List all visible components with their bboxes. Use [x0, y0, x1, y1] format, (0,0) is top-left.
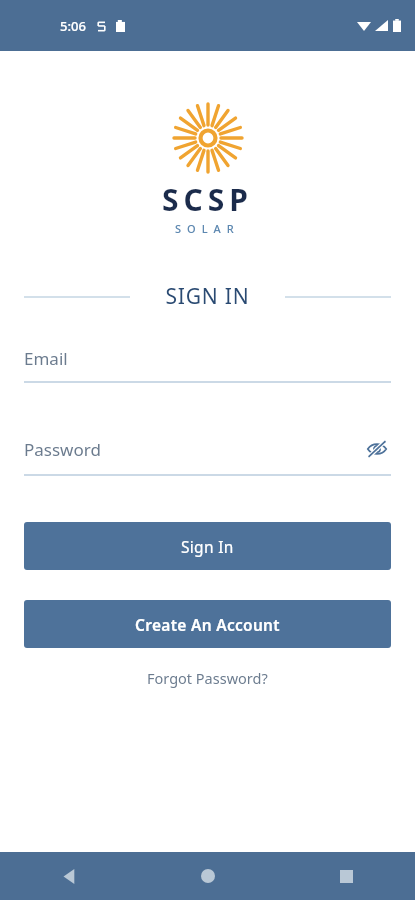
staticText: Forgot Password? — [147, 668, 268, 688]
button[interactable]: Create An Account — [24, 600, 391, 648]
staticText: SOLAR — [175, 221, 240, 236]
staticText: Email — [24, 347, 391, 370]
button[interactable]: Password — [24, 435, 391, 476]
button[interactable]: Email — [24, 347, 391, 383]
button[interactable]: Show password — [363, 435, 391, 463]
staticText: 5:06 — [60, 17, 86, 35]
staticText: SCSP — [162, 179, 253, 220]
button[interactable]: Sign In — [24, 522, 391, 570]
staticText: Password — [24, 438, 363, 461]
staticText: Create An Account — [135, 614, 280, 635]
staticText: SIGN IN — [165, 282, 250, 311]
button[interactable]: Back — [0, 852, 139, 900]
staticText: Sign In — [181, 536, 234, 557]
button[interactable]: Home — [139, 852, 277, 900]
button[interactable]: Forgot Password? — [0, 662, 415, 694]
button[interactable]: Recent apps — [277, 852, 415, 900]
